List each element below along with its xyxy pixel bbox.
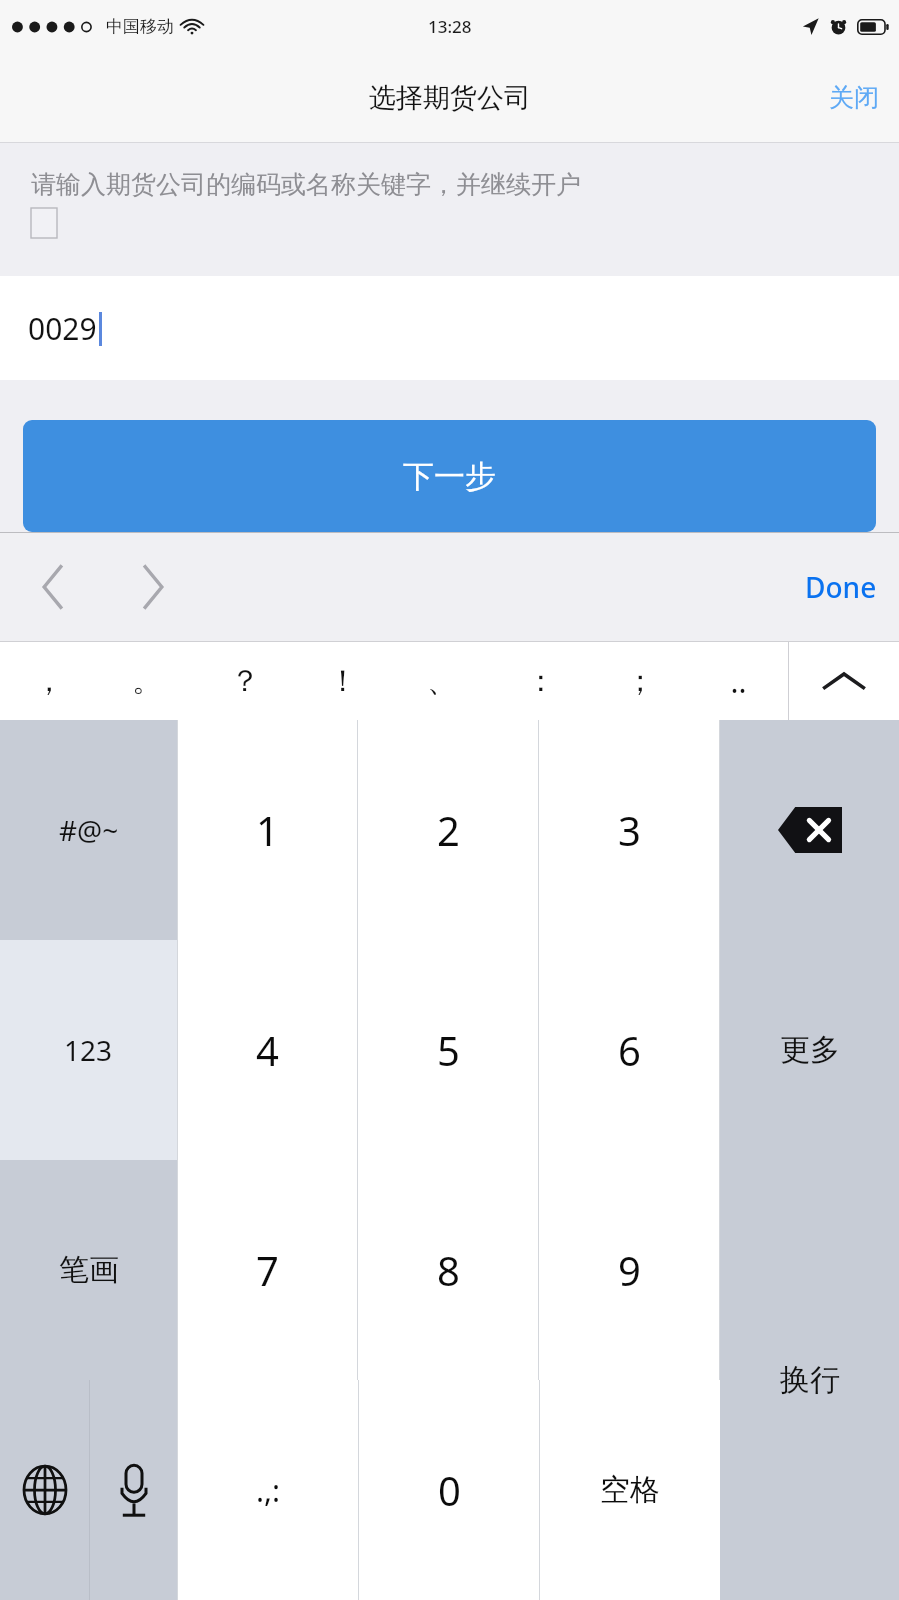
- button[interactable]: 9: [539, 1160, 719, 1380]
- staticText: 8: [437, 1243, 460, 1297]
- staticText: ：: [526, 662, 556, 700]
- staticText: 。: [132, 662, 162, 700]
- staticText: 0029: [28, 308, 97, 349]
- button[interactable]: Next field: [122, 552, 184, 622]
- button[interactable]: ，: [0, 642, 98, 720]
- staticText: ；: [625, 662, 655, 700]
- staticText: 、: [427, 662, 457, 700]
- button[interactable]: #@~: [0, 720, 177, 940]
- staticText: 选择期货公司: [369, 81, 531, 115]
- button[interactable]: Voice input: [90, 1380, 177, 1600]
- button[interactable]: .,:: [178, 1380, 358, 1600]
- button[interactable]: Change keyboard language: [0, 1380, 89, 1600]
- button[interactable]: 6: [539, 940, 719, 1160]
- staticText: 换行: [780, 1361, 840, 1399]
- button[interactable]: 4: [178, 940, 357, 1160]
- staticText: 7: [256, 1243, 279, 1297]
- staticText: .,:: [256, 1470, 281, 1511]
- button[interactable]: Expand candidates: [789, 642, 899, 720]
- button[interactable]: Previous field: [22, 552, 84, 622]
- button[interactable]: ？: [196, 642, 294, 720]
- button[interactable]: ..: [689, 642, 788, 720]
- button[interactable]: 笔画: [0, 1160, 177, 1380]
- button[interactable]: 123: [0, 940, 177, 1160]
- staticText: 关闭: [829, 82, 879, 113]
- button[interactable]: Backspace: [720, 720, 899, 940]
- staticText: Done: [805, 568, 877, 606]
- button[interactable]: 、: [392, 642, 491, 720]
- button[interactable]: 更多: [720, 940, 899, 1160]
- staticText: 13:28: [428, 15, 472, 38]
- button[interactable]: ！: [294, 642, 392, 720]
- staticText: ！: [328, 662, 358, 700]
- staticText: ？: [230, 662, 260, 700]
- button[interactable]: ：: [491, 642, 590, 720]
- staticText: 4: [256, 1023, 279, 1077]
- button[interactable]: 1: [178, 720, 357, 940]
- button[interactable]: 0029: [0, 276, 899, 380]
- button[interactable]: 0: [359, 1380, 539, 1600]
- staticText: 中国移动: [106, 16, 174, 37]
- staticText: 更多: [780, 1031, 840, 1069]
- button[interactable]: Done: [783, 554, 899, 620]
- staticText: 9: [618, 1243, 641, 1297]
- button[interactable]: 空格: [540, 1380, 720, 1600]
- button[interactable]: 7: [178, 1160, 357, 1380]
- button[interactable]: 5: [358, 940, 538, 1160]
- button[interactable]: 关闭: [809, 68, 899, 127]
- button[interactable]: 2: [358, 720, 538, 940]
- button[interactable]: 换行: [720, 1160, 899, 1600]
- staticText: #@~: [59, 811, 119, 849]
- staticText: 下一步: [403, 457, 496, 496]
- staticText: 请输入期货公司的编码或名称关键字，并继续开户: [31, 169, 581, 200]
- staticText: 6: [618, 1023, 641, 1077]
- button[interactable]: 8: [358, 1160, 538, 1380]
- staticText: 1: [256, 803, 279, 857]
- staticText: 3: [618, 803, 641, 857]
- staticText: 0: [438, 1463, 461, 1517]
- staticText: 123: [64, 1031, 113, 1069]
- staticText: 5: [437, 1023, 460, 1077]
- button[interactable]: ；: [590, 642, 689, 720]
- button[interactable]: 。: [98, 642, 196, 720]
- staticText: 2: [437, 803, 460, 857]
- button[interactable]: 3: [539, 720, 719, 940]
- staticText: 笔画: [59, 1251, 119, 1289]
- button[interactable]: 下一步: [23, 420, 876, 532]
- staticText: ..: [730, 661, 747, 702]
- staticText: ，: [34, 662, 64, 700]
- staticText: 空格: [600, 1471, 660, 1509]
